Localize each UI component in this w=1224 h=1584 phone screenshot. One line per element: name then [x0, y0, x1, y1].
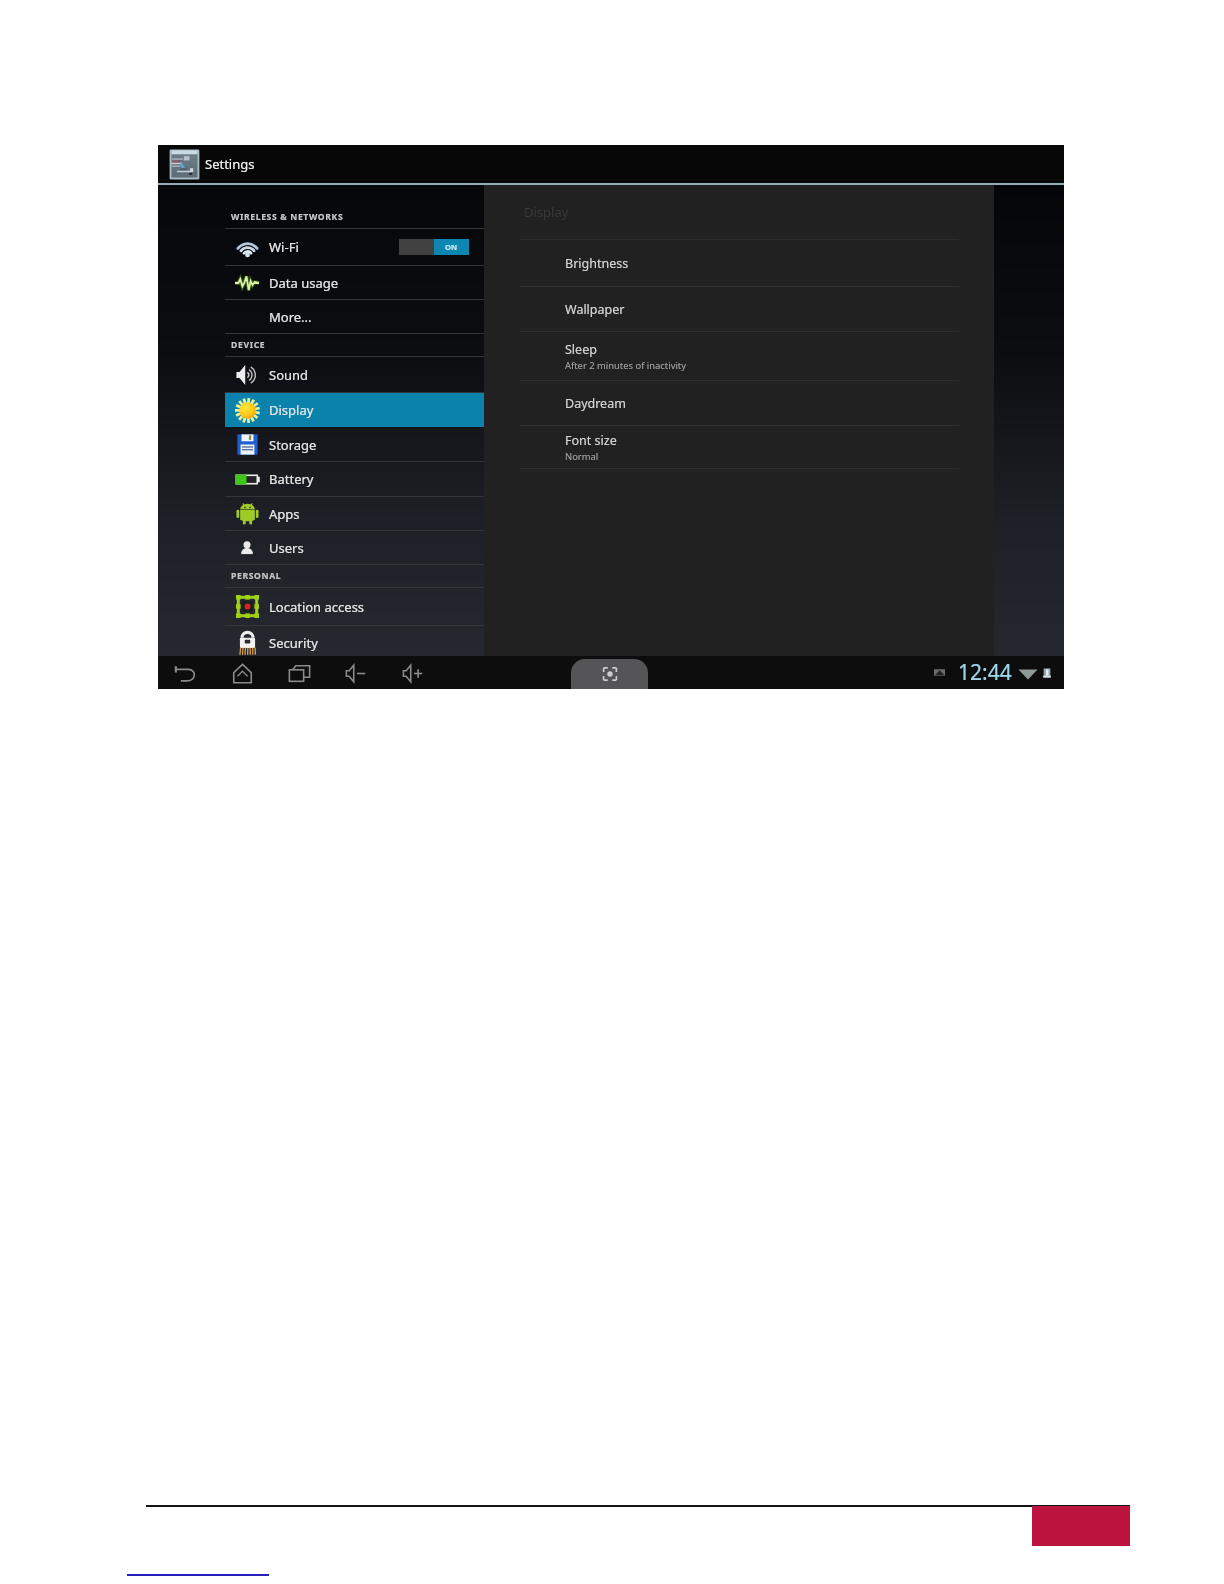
button[interactable]: Home	[229, 660, 255, 686]
button[interactable]: Display	[225, 393, 484, 427]
staticText: WIRELESS & NETWORKS	[231, 211, 344, 223]
staticText: Location access	[269, 598, 365, 616]
staticText: Sleep	[565, 341, 597, 358]
staticText: Users	[269, 539, 304, 557]
staticText: Data usage	[269, 274, 339, 292]
staticText: Battery	[269, 470, 314, 488]
staticText: PERSONAL	[231, 570, 282, 582]
button[interactable]: Daydream	[484, 381, 994, 425]
staticText: ON	[445, 242, 458, 252]
staticText: Wallpaper	[565, 301, 625, 318]
button[interactable]: Volume down	[343, 660, 369, 686]
button[interactable]: Font size	[484, 426, 994, 468]
button[interactable]: Data usage	[225, 266, 484, 299]
staticText: Display	[269, 401, 314, 419]
button[interactable]: Recent apps	[286, 660, 312, 686]
button[interactable]: Apps	[225, 497, 484, 530]
staticText: Brightness	[565, 255, 629, 272]
button[interactable]: More...	[225, 300, 484, 333]
button[interactable]: Wi-Fi	[225, 229, 484, 265]
button[interactable]: Settings	[158, 145, 1064, 183]
staticText: Apps	[269, 505, 300, 523]
button[interactable]: Sound	[225, 357, 484, 392]
staticText: More...	[269, 308, 312, 326]
staticText: Display	[524, 203, 569, 221]
button[interactable]: Security	[225, 626, 484, 660]
staticText: Security	[269, 634, 318, 652]
staticText: Normal	[565, 450, 599, 463]
staticText: Storage	[269, 436, 317, 454]
staticText: Daydream	[565, 395, 626, 412]
button[interactable]: Brightness	[484, 240, 994, 286]
button[interactable]: Location access	[225, 588, 484, 625]
button[interactable]: Sleep	[484, 332, 994, 380]
button[interactable]: Back	[172, 660, 198, 686]
button[interactable]: Battery	[225, 462, 484, 496]
button[interactable]: Wallpaper	[484, 287, 994, 331]
button[interactable]: Storage	[225, 428, 484, 461]
staticText: Sound	[269, 366, 309, 384]
button[interactable]: Users	[225, 531, 484, 564]
staticText: DEVICE	[231, 339, 266, 351]
staticText: After 2 minutes of inactivity	[565, 359, 687, 372]
staticText: Font size	[565, 432, 617, 449]
button[interactable]: Screenshot	[571, 659, 648, 689]
button[interactable]: Volume up	[400, 660, 426, 686]
staticText: Wi-Fi	[269, 238, 299, 256]
staticText: Settings	[205, 155, 255, 173]
staticText: 12:44	[958, 658, 1012, 687]
